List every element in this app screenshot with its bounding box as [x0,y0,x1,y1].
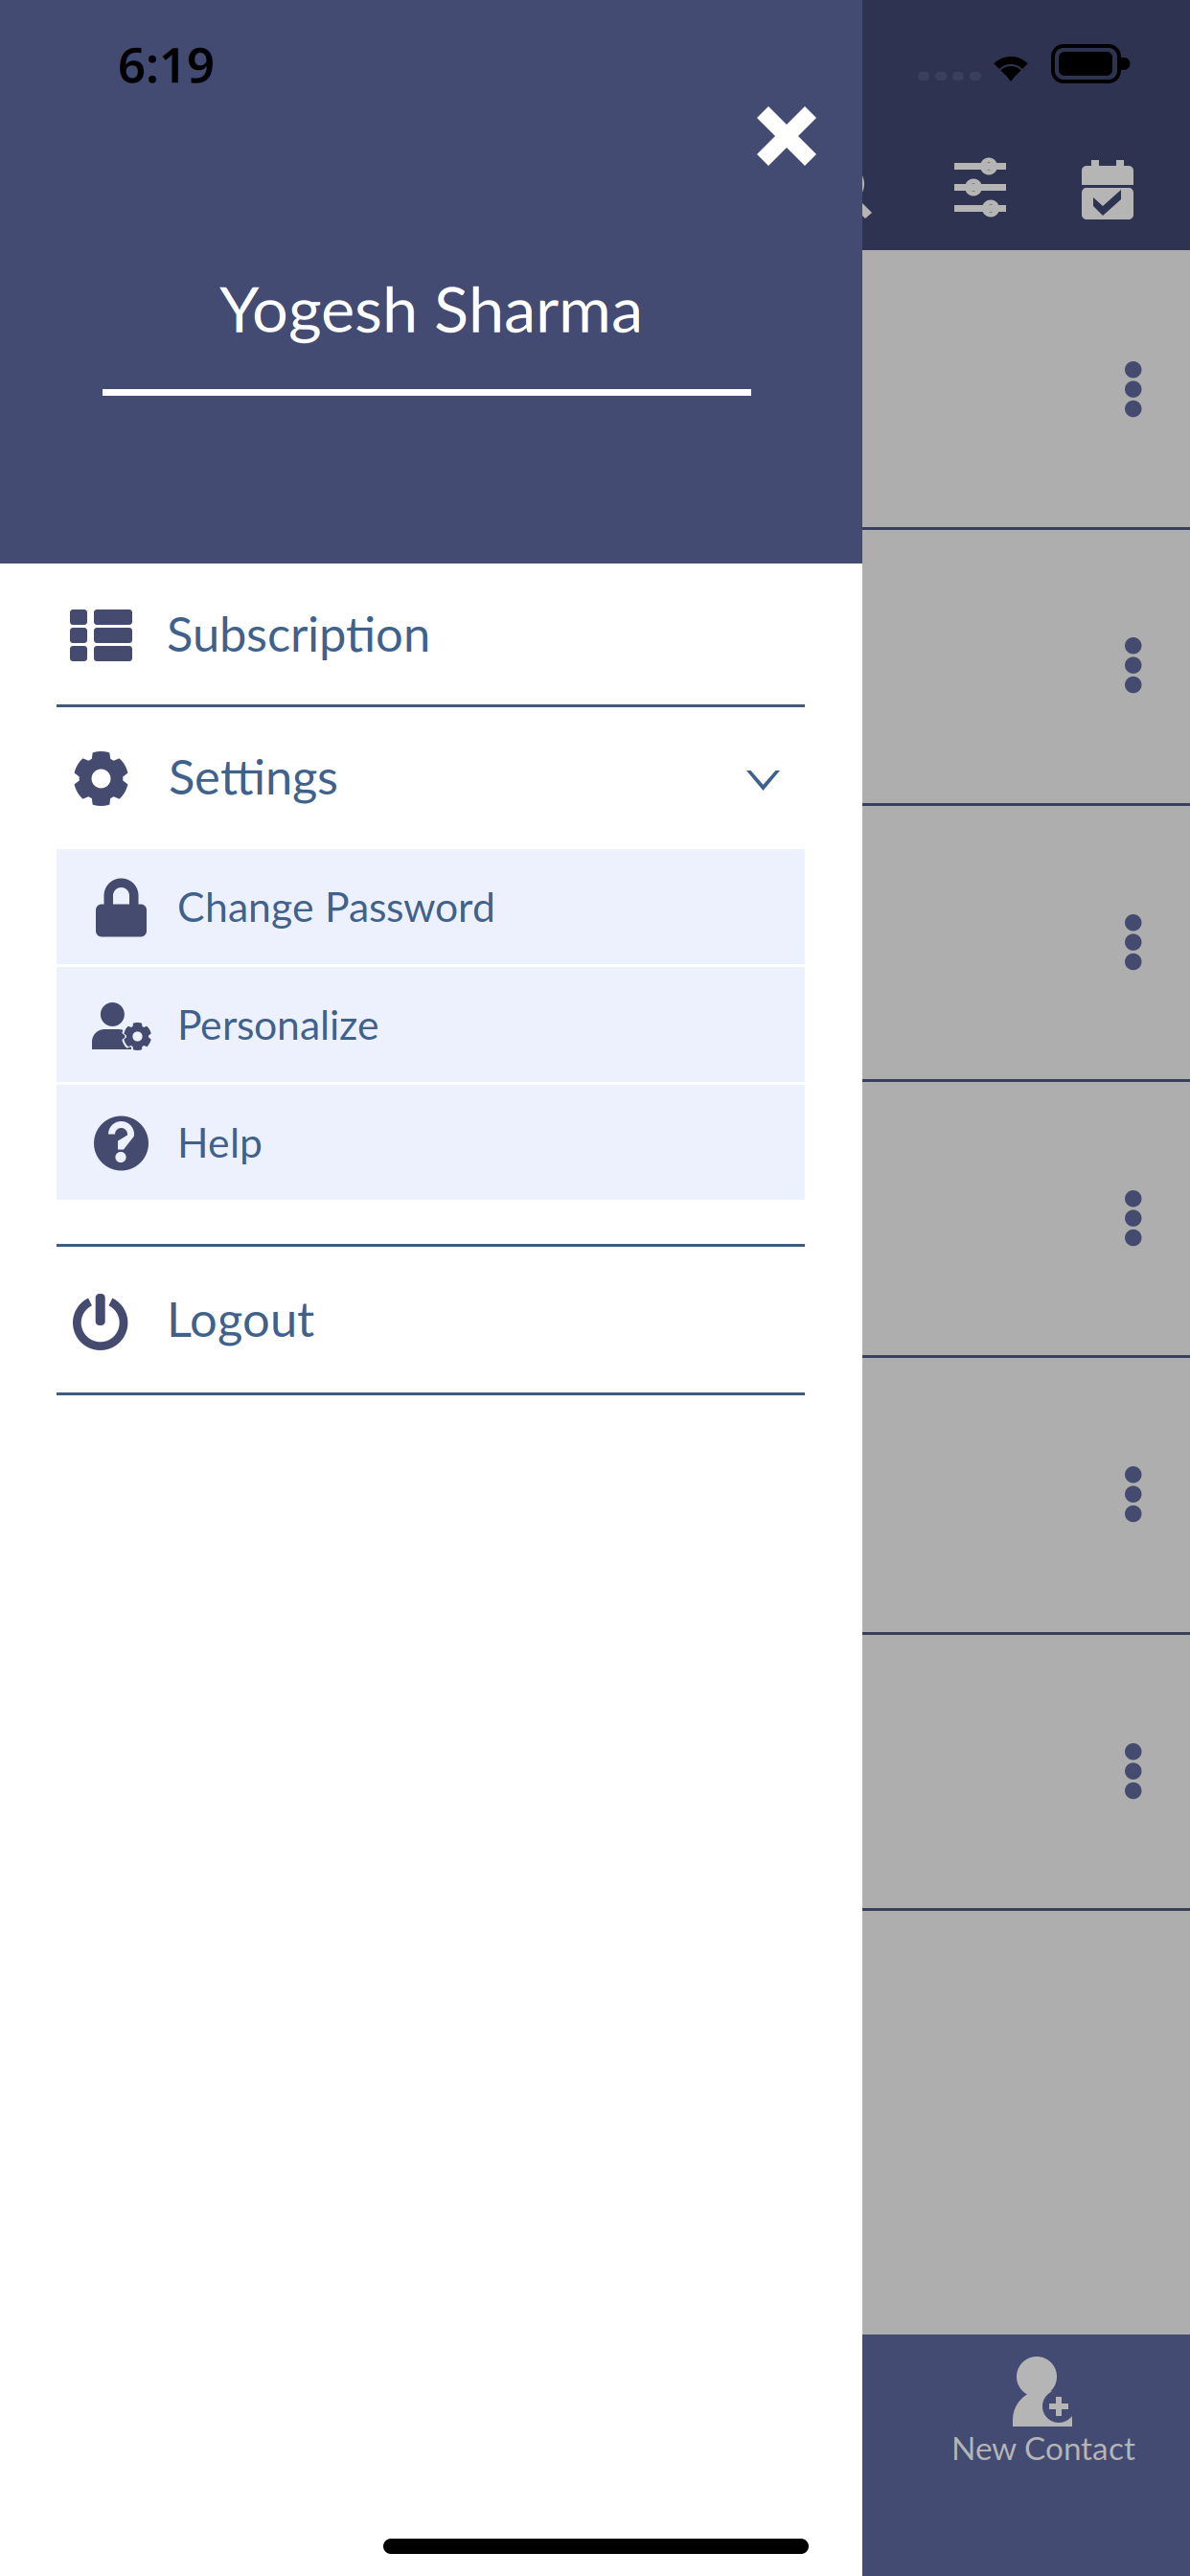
button[interactable]: More options [1125,1743,1142,1799]
button[interactable]: Subscription [0,563,862,705]
staticText: 6:19 [118,32,215,96]
button[interactable]: Personalize [57,967,805,1082]
staticText: Logout [167,1289,314,1347]
button[interactable]: Logout [0,1252,862,1393]
button[interactable]: More options [1125,1190,1142,1246]
button[interactable]: Change Password [57,849,805,964]
staticText: Personalize [177,1000,379,1049]
staticText: Yogesh Sharma [219,269,643,346]
button[interactable]: Settings [0,707,862,849]
button[interactable]: Calendar [1082,160,1133,219]
button[interactable]: More options [1125,637,1142,693]
button[interactable]: Help [57,1085,805,1200]
button[interactable]: More options [1125,361,1142,417]
button[interactable]: New Contact [951,2357,1190,2479]
staticText: Help [177,1117,263,1166]
staticText: Subscription [167,604,430,662]
button[interactable]: Close [757,106,816,166]
staticText: Settings [169,747,338,805]
button[interactable]: Search [824,163,878,222]
button[interactable]: More options [1125,914,1142,970]
button[interactable]: Filter [954,161,1006,215]
staticText: New Contact [951,2428,1135,2467]
button[interactable]: More options [1125,1466,1142,1522]
staticText: Change Password [177,882,495,931]
